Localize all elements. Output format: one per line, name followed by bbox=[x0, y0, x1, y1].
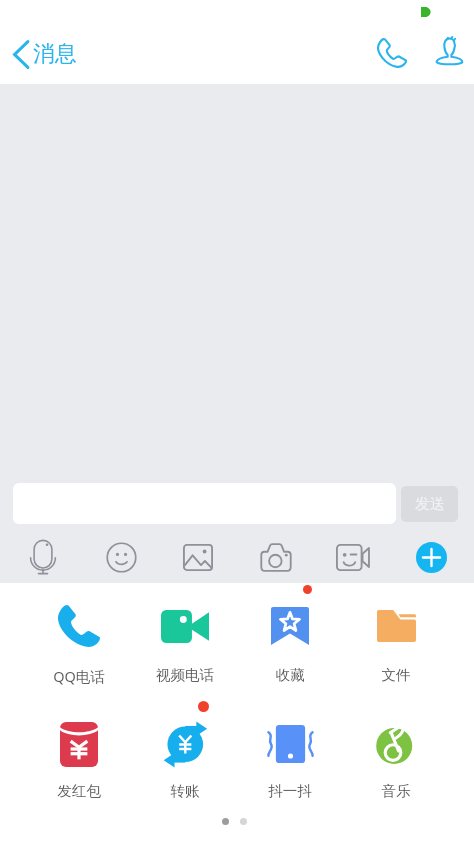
staticText: 转账 bbox=[143, 782, 227, 800]
button[interactable]: Profile bbox=[428, 29, 470, 71]
button[interactable]: Call bbox=[371, 32, 413, 74]
staticText: 收藏 bbox=[248, 666, 332, 684]
staticText: 发红包 bbox=[37, 782, 121, 800]
button[interactable]: 文件 bbox=[354, 605, 438, 685]
staticText: 发送 bbox=[415, 495, 445, 514]
button[interactable]: Camera bbox=[255, 536, 297, 578]
button[interactable]: 抖一抖 bbox=[248, 723, 332, 803]
button[interactable]: 视频电话 bbox=[143, 605, 227, 685]
button[interactable]: 消息 bbox=[13, 38, 77, 70]
button[interactable]: Emoji bbox=[100, 536, 142, 578]
staticText: 视频电话 bbox=[143, 666, 227, 684]
button[interactable]: 转账 bbox=[143, 723, 227, 803]
button[interactable]: 发红包 bbox=[37, 723, 121, 803]
staticText: 抖一抖 bbox=[248, 782, 332, 800]
staticText: 文件 bbox=[354, 666, 438, 684]
staticText: QQ电话 bbox=[37, 666, 121, 686]
button[interactable]: 发送 bbox=[401, 486, 458, 522]
staticText: 音乐 bbox=[354, 782, 438, 800]
button[interactable]: 音乐 bbox=[354, 723, 438, 803]
button[interactable]: Video chat bbox=[332, 536, 374, 578]
button[interactable]: Photo bbox=[177, 536, 219, 578]
button[interactable]: QQ电话 bbox=[37, 605, 121, 685]
button[interactable]: Voice message bbox=[22, 536, 64, 578]
button[interactable]: More bbox=[410, 536, 452, 578]
button[interactable]: 收藏 bbox=[248, 605, 332, 685]
staticText: 消息 bbox=[33, 40, 77, 68]
